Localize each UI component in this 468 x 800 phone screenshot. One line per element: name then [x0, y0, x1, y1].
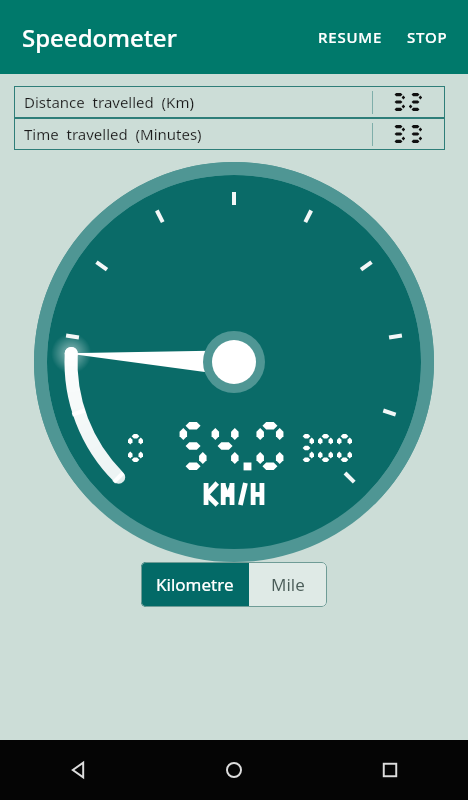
staticText: Kilometre [156, 573, 234, 596]
button[interactable]: RESUME [308, 19, 393, 55]
staticText: Mile [271, 573, 305, 596]
button[interactable]: STOP [393, 19, 468, 55]
button[interactable]: Back [0, 740, 156, 800]
staticText: Distance travelled (Km) [24, 92, 372, 112]
button[interactable]: Time travelled (Minutes) [14, 118, 445, 150]
button[interactable]: Recents [312, 740, 468, 800]
staticText: Time travelled (Minutes) [24, 124, 372, 144]
button[interactable]: Kilometre [141, 562, 249, 607]
button[interactable]: Mile [249, 562, 327, 607]
button[interactable]: Home [156, 740, 312, 800]
button[interactable]: Distance travelled (Km) [14, 86, 445, 118]
staticText: STOP [407, 27, 448, 47]
staticText: Speedometer [22, 21, 177, 54]
staticText: RESUME [318, 27, 383, 47]
